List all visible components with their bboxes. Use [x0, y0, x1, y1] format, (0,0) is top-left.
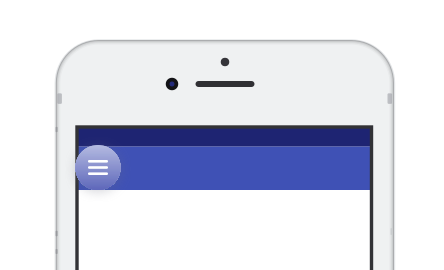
button[interactable]: Open navigation menu: [75, 145, 120, 190]
